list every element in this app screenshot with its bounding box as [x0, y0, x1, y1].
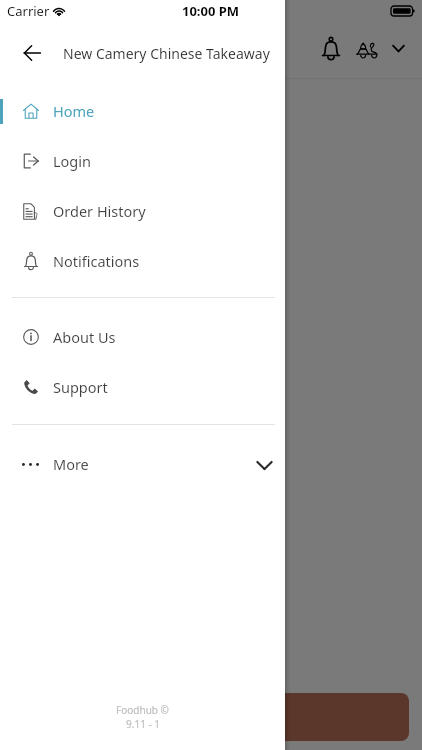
button[interactable]: Back: [0, 28, 63, 78]
staticText: Order History: [53, 201, 146, 221]
staticText: Support: [53, 377, 108, 397]
button[interactable]: Back: [0, 28, 63, 78]
button[interactable]: Delivery options: [349, 28, 385, 78]
staticText: Login: [53, 151, 91, 171]
staticText: About Us: [53, 327, 116, 347]
button[interactable]: More: [0, 443, 285, 485]
staticText: Carrier: [7, 2, 50, 20]
staticText: 9.11 - 1: [126, 717, 160, 731]
button[interactable]: About Us: [0, 312, 285, 362]
button[interactable]: Notifications: [0, 236, 285, 286]
staticText: More: [53, 454, 89, 474]
staticText: Foodhub ©: [116, 703, 169, 717]
staticText: Notifications: [53, 251, 140, 271]
button[interactable]: [13, 693, 409, 741]
button[interactable]: Expand: [385, 28, 422, 78]
staticText: New Camery Chinese Takeaway: [63, 44, 270, 63]
staticText: Home: [53, 101, 95, 121]
button[interactable]: Order History: [0, 186, 285, 236]
staticText: New Camery Chinese Takeaway: [63, 44, 270, 63]
button[interactable]: Home: [0, 86, 285, 136]
button[interactable]: Login: [0, 136, 285, 186]
staticText: 10:00 PM: [182, 2, 240, 20]
button[interactable]: Notifications: [313, 28, 349, 78]
button[interactable]: Support: [0, 362, 285, 412]
